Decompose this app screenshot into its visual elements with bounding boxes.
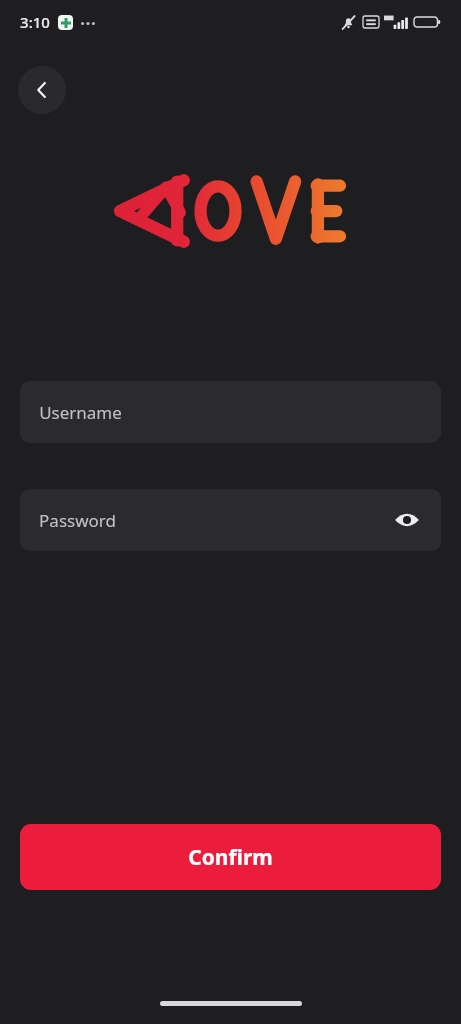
staticText: 3:10 bbox=[20, 12, 50, 32]
button[interactable]: Back bbox=[18, 66, 66, 114]
staticText: Confirm bbox=[188, 843, 273, 872]
button[interactable]: Username bbox=[20, 381, 441, 443]
button[interactable]: Confirm bbox=[20, 824, 441, 890]
button[interactable]: Show password bbox=[392, 505, 422, 535]
staticText: Username bbox=[39, 401, 122, 424]
button[interactable]: Password bbox=[20, 489, 441, 551]
staticText: Password bbox=[39, 509, 116, 532]
